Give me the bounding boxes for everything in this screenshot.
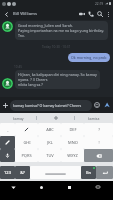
button[interactable]: kamay kamisa? O kamay kaimet? Cheers	[10, 100, 92, 111]
button[interactable]: Switch keyboard	[83, 181, 113, 193]
button[interactable]: More options	[104, 10, 112, 18]
button[interactable]: DEF	[61, 123, 84, 136]
button[interactable]: Send	[102, 100, 112, 110]
button[interactable]	[37, 113, 75, 123]
staticText: kamisa	[88, 116, 100, 121]
button[interactable]	[0, 149, 15, 162]
button[interactable]: PQRS	[15, 149, 38, 162]
button[interactable]	[84, 149, 113, 162]
staticText: DEF	[69, 127, 77, 132]
button[interactable]: kamisa	[75, 113, 113, 123]
button[interactable]: 123	[0, 166, 15, 179]
staticText: TUV	[46, 153, 54, 158]
button[interactable]: Ok morning, no prob	[68, 53, 110, 62]
button[interactable]: Good morning, Julien and Sarah. Paying i…	[15, 21, 108, 40]
button[interactable]: Home	[26, 181, 56, 193]
button[interactable]: Hi Jean, ka kaliyapan diri ning nanay. S…	[15, 70, 100, 89]
button[interactable]	[96, 166, 113, 179]
button[interactable]	[30, 166, 81, 179]
staticText: 10:45	[14, 65, 23, 69]
button[interactable]: TUV	[38, 149, 61, 162]
button[interactable]: Add attachment	[1, 101, 10, 110]
staticText: kamay	[13, 116, 24, 121]
staticText: 123	[4, 170, 11, 175]
button[interactable]	[0, 136, 15, 149]
button[interactable]: ?	[84, 123, 113, 136]
staticText: kamay kamisa? O kamay kaimet? Cheers	[13, 103, 82, 108]
staticText: Today 10:30 · 10:31	[42, 45, 71, 49]
button[interactable]: WXYZ	[61, 149, 84, 162]
button[interactable]: JKL	[38, 136, 61, 149]
button[interactable]: &?	[15, 166, 30, 179]
staticText: MNO	[68, 140, 78, 145]
button[interactable]: Recent apps	[56, 181, 83, 193]
staticText: JKL	[47, 140, 53, 145]
button[interactable]: Back	[0, 181, 26, 193]
staticText: ?	[98, 127, 100, 132]
staticText: Good morning, Julien and Sarah. Paying i…	[18, 23, 105, 38]
button[interactable]: kamay	[0, 113, 37, 123]
button[interactable]: MNO	[61, 136, 84, 149]
staticText: ,	[7, 127, 9, 132]
staticText: &?	[20, 170, 25, 175]
staticText: WXYZ	[67, 153, 78, 158]
button[interactable]: En	[81, 166, 96, 179]
button[interactable]: Emoji	[92, 100, 102, 110]
staticText: Bill Williams	[13, 11, 38, 17]
staticText: ABC	[46, 127, 54, 132]
staticText: GHI	[23, 140, 31, 145]
staticText: !	[98, 140, 100, 145]
button[interactable]: Search	[95, 9, 104, 18]
staticText: Hi Jean, ka kaliyapan diri ning nanay. S…	[18, 72, 97, 87]
button[interactable]: ABC	[38, 123, 61, 136]
staticText: PQRS	[21, 153, 32, 158]
button[interactable]	[15, 123, 38, 136]
button[interactable]: Video call	[77, 9, 86, 18]
staticText: 22:19	[95, 2, 104, 6]
button[interactable]: Back	[1, 9, 11, 19]
staticText: Ok morning, no prob	[71, 55, 107, 60]
button[interactable]: GHI	[15, 136, 38, 149]
staticText: En	[86, 170, 91, 175]
button[interactable]: Call	[86, 9, 95, 18]
